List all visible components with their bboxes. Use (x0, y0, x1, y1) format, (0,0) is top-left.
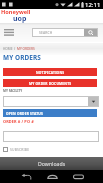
staticText: uop (13, 14, 27, 24)
staticText: MY ORDERS (17, 47, 35, 51)
staticText: Downloads (38, 160, 66, 167)
staticText: ORDER # / PO # (3, 119, 34, 124)
button[interactable]: Order number field (3, 131, 99, 142)
staticText: OPEN ORDER STATUS (6, 111, 43, 115)
staticText: MY ORDER DOCUMENTS (29, 81, 72, 85)
staticText: HOME (3, 47, 14, 51)
button[interactable]: Back (18, 171, 34, 182)
staticText: SEARCH (39, 30, 53, 35)
staticText: Honeywell (1, 8, 31, 16)
button[interactable]: Recent apps (70, 171, 86, 182)
staticText: / (14, 47, 17, 51)
button[interactable]: Home (44, 171, 60, 182)
button[interactable]: Search (84, 28, 98, 37)
button[interactable]: Downloads (0, 157, 103, 170)
button[interactable]: OPEN ORDER STATUS (3, 109, 97, 117)
button[interactable]: NOTIFICATIONS (3, 68, 97, 76)
button[interactable]: My facility (3, 96, 99, 107)
button[interactable]: SUBSCRIBE (3, 147, 30, 152)
staticText: 12:11 (85, 1, 101, 9)
button[interactable]: MY ORDER DOCUMENTS (3, 79, 97, 87)
staticText: MY FACILITY (3, 89, 23, 93)
staticText: MY ORDERS (3, 53, 41, 62)
staticText: NOTIFICATIONS (36, 70, 65, 74)
button[interactable]: Menu (2, 26, 16, 38)
staticText: SUBSCRIBE (10, 147, 30, 152)
